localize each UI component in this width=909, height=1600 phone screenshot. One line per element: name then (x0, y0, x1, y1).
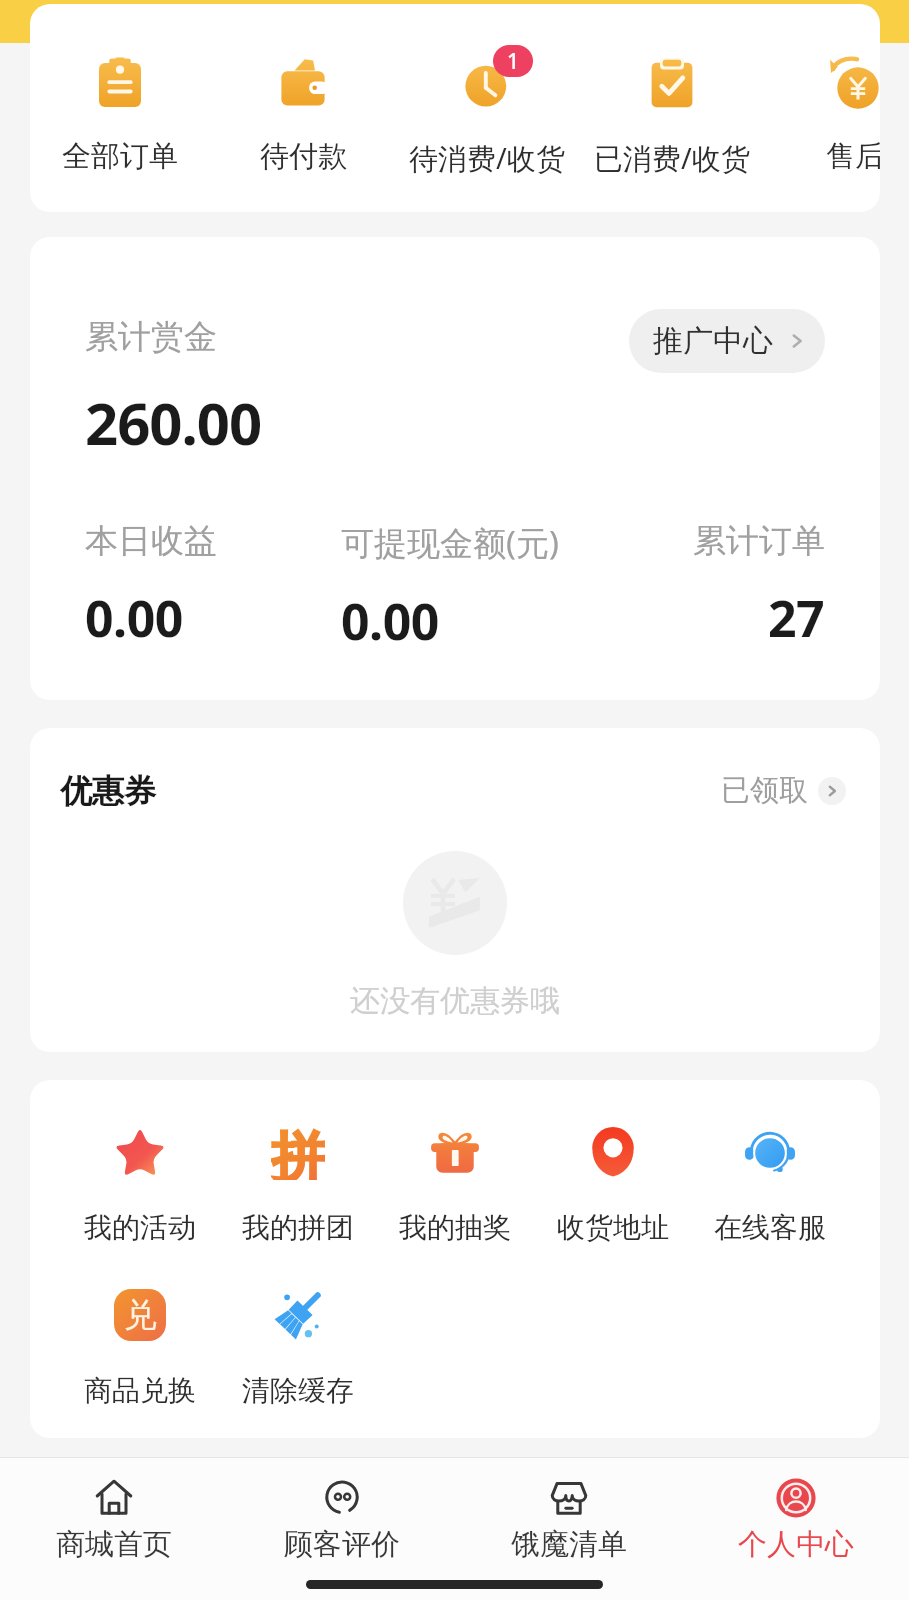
staticText: 我的拼团 (242, 1210, 354, 1245)
staticText: 待付款 (260, 138, 347, 175)
staticText: 优惠券 (60, 771, 156, 811)
staticText: 清除缓存 (242, 1373, 354, 1408)
staticText: 兑 (124, 1294, 157, 1336)
staticText: 我的活动 (84, 1210, 196, 1245)
staticText: 0.00 (85, 584, 183, 652)
staticText: 饿魔清单 (511, 1526, 627, 1563)
staticText: 在线客服 (714, 1210, 826, 1245)
button[interactable]: 在线客服 (692, 1124, 848, 1264)
staticText: 我的抽奖 (399, 1210, 511, 1245)
button[interactable]: 售后 (765, 4, 880, 184)
staticText: 待消费/收货 (409, 138, 565, 178)
staticText: 累计订单 (693, 520, 825, 562)
staticText: 27 (768, 584, 825, 652)
button[interactable]: 全部订单 (30, 4, 210, 184)
staticText: 本日收益 (85, 520, 217, 562)
button[interactable]: 收货地址 (535, 1124, 691, 1264)
staticText: 还没有优惠券哦 (350, 982, 560, 1020)
button[interactable]: 待付款 (213, 4, 393, 184)
button[interactable]: 清除缓存 (220, 1287, 376, 1427)
staticText: 顾客评价 (284, 1526, 400, 1563)
staticText: 个人中心 (738, 1526, 854, 1563)
button[interactable]: 兑 (62, 1287, 218, 1427)
staticText: 0.00 (341, 587, 439, 655)
button[interactable]: 顾客评价 (228, 1458, 455, 1568)
button[interactable]: 拼 (220, 1124, 376, 1264)
staticText: 累计赏金 (85, 316, 217, 358)
button[interactable]: 1 (397, 4, 577, 184)
staticText: 已消费/收货 (594, 138, 750, 178)
staticText: 可提现金额(元) (341, 520, 559, 565)
button[interactable]: 商城首页 (0, 1458, 228, 1568)
staticText: 已领取 (721, 772, 808, 809)
staticText: 260.00 (85, 383, 262, 462)
staticText: 1 (507, 47, 520, 76)
staticText: 收货地址 (557, 1210, 669, 1245)
staticText: 售后 (826, 138, 880, 175)
button[interactable]: 饿魔清单 (455, 1458, 682, 1568)
button[interactable]: 已消费/收货 (582, 4, 762, 184)
staticText: 商品兑换 (84, 1373, 196, 1408)
button[interactable]: 推广中心 (629, 309, 825, 373)
staticText: 全部订单 (62, 138, 178, 175)
staticText: 拼 (271, 1124, 325, 1180)
button[interactable]: 个人中心 (682, 1458, 909, 1568)
staticText: 推广中心 (653, 322, 773, 360)
button[interactable]: 我的活动 (62, 1124, 218, 1264)
button[interactable]: 已领取 (715, 766, 852, 815)
button[interactable]: 我的抽奖 (377, 1124, 533, 1264)
staticText: 商城首页 (56, 1526, 172, 1563)
